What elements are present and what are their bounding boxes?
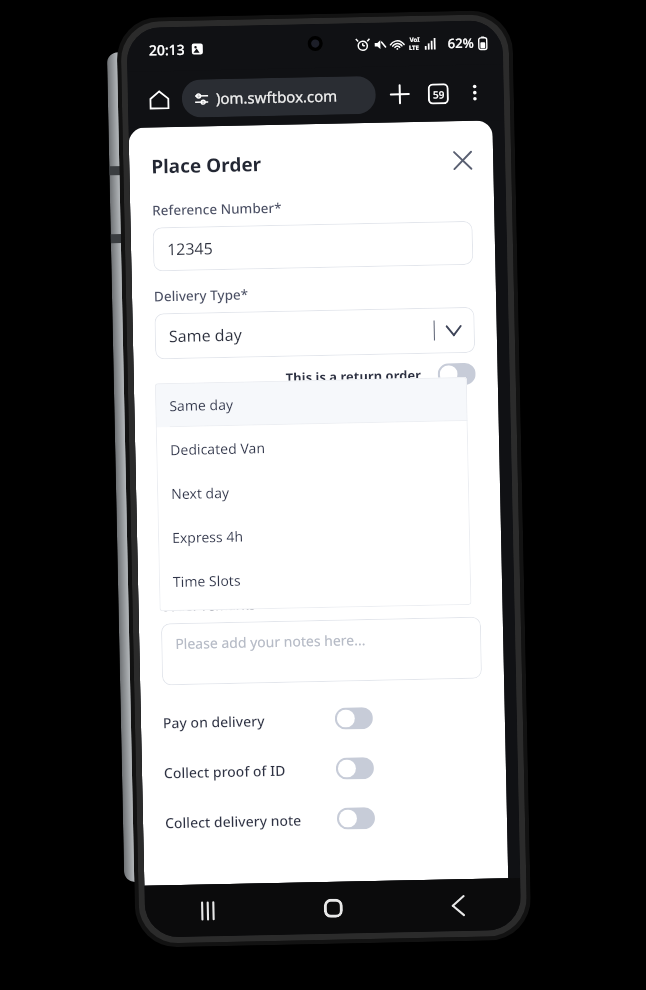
staticText: Dedicated Van bbox=[170, 438, 265, 459]
button[interactable]: Same day bbox=[154, 307, 475, 359]
staticText: )om.swftbox.com bbox=[216, 85, 338, 108]
staticText: Next day bbox=[171, 483, 229, 503]
button[interactable]: Next day bbox=[157, 465, 470, 515]
button[interactable]: Pay on delivery bbox=[141, 704, 505, 734]
button[interactable]: Time Slots bbox=[158, 553, 471, 603]
staticText: 59 bbox=[433, 87, 445, 101]
button[interactable]: Home bbox=[139, 80, 178, 119]
staticText: Express 4h bbox=[172, 527, 243, 547]
staticText: Delivery Type* bbox=[154, 285, 249, 305]
staticText: Same day bbox=[169, 324, 242, 347]
button[interactable]: Recent apps bbox=[144, 883, 271, 938]
button[interactable]: Toggle bbox=[337, 807, 375, 830]
button[interactable]: Toggle bbox=[336, 757, 374, 780]
staticText: This is a return order bbox=[285, 366, 422, 387]
button[interactable]: Same day bbox=[155, 377, 468, 427]
staticText: LTE bbox=[409, 44, 420, 52]
staticText: Collect delivery note bbox=[165, 810, 302, 832]
button[interactable]: 12345 bbox=[152, 221, 473, 271]
staticText: Pay on delivery bbox=[163, 711, 265, 732]
button[interactable]: Express 4h bbox=[158, 509, 470, 559]
button[interactable]: More options bbox=[457, 75, 492, 110]
button[interactable]: Toggle bbox=[335, 707, 373, 730]
button[interactable]: Collect proof of ID bbox=[142, 754, 506, 784]
staticText: Time Slots bbox=[173, 571, 241, 591]
staticText: Place Order bbox=[151, 151, 261, 179]
staticText: Collect proof of ID bbox=[164, 761, 286, 782]
staticText: 62% bbox=[448, 34, 474, 52]
staticText: Reference Number* bbox=[152, 199, 282, 219]
staticText: VoI bbox=[410, 36, 420, 44]
button[interactable]: Home bbox=[270, 880, 396, 935]
button[interactable]: Toggle bbox=[437, 363, 476, 385]
button[interactable]: Dedicated Van bbox=[156, 421, 469, 471]
button[interactable]: Collect delivery note bbox=[143, 804, 507, 834]
staticText: Same day bbox=[169, 395, 233, 415]
button[interactable]: Please add your notes here... bbox=[161, 617, 482, 685]
staticText: Please add your notes here... bbox=[175, 630, 366, 653]
button[interactable]: )om.swftbox.com bbox=[181, 76, 376, 118]
button[interactable]: Back bbox=[395, 878, 521, 932]
staticText: 12345 bbox=[167, 237, 213, 260]
button[interactable]: New tab bbox=[381, 76, 418, 113]
button[interactable]: Tabs, 59 open bbox=[419, 75, 456, 112]
button[interactable]: Close bbox=[445, 143, 480, 177]
staticText: Order remarks bbox=[160, 595, 256, 615]
button[interactable]: This is a return order bbox=[155, 363, 476, 391]
staticText: 20:13 bbox=[149, 40, 185, 59]
